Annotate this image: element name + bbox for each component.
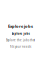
staticText: Explore jobs: [11, 32, 29, 35]
staticText: fits your needs: [10, 45, 31, 48]
staticText: Explore jobs: [8, 23, 33, 29]
staticText: Explore the jobs that: [6, 38, 35, 42]
